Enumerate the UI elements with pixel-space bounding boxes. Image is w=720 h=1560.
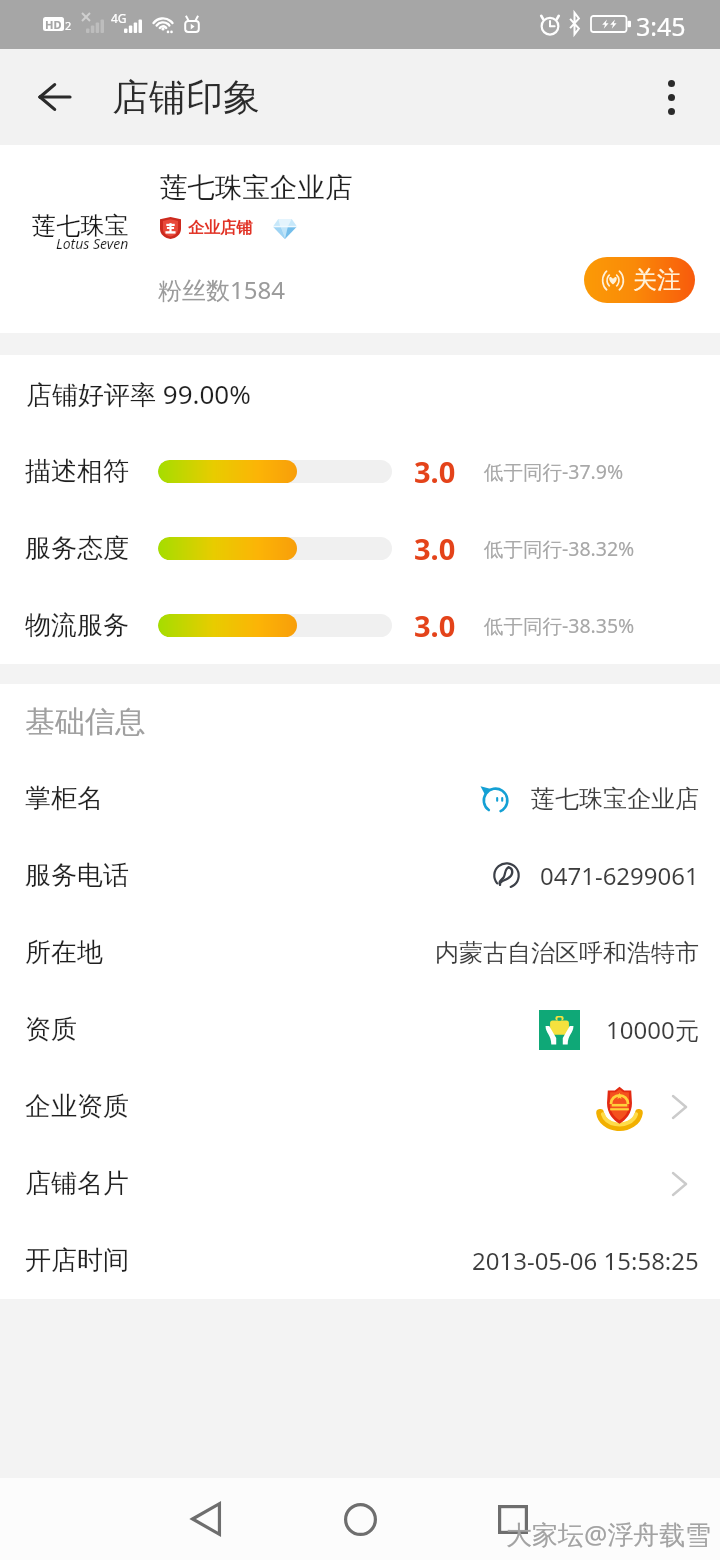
staticText: 3:45 [636, 9, 686, 43]
staticText: 0471-6299061 [540, 859, 699, 892]
staticText: 4G [111, 10, 127, 26]
button[interactable]: Back [0, 49, 110, 145]
staticText: 3.0 [414, 452, 456, 491]
staticText: 莲七珠宝 [32, 211, 129, 241]
staticText: 掌柜名 [25, 782, 103, 815]
button[interactable]: More options [630, 49, 720, 145]
staticText: 描述相符 [25, 455, 129, 488]
staticText: 大家坛@浮舟载雪 [506, 1516, 712, 1552]
button[interactable]: 服务电话 [0, 837, 720, 914]
button[interactable]: 开店时间 [0, 1222, 720, 1299]
staticText: 低于同行-38.35% [484, 612, 635, 639]
staticText: 企业店铺 [188, 218, 252, 238]
button[interactable]: 企业资质 [0, 1068, 720, 1145]
button[interactable]: 店铺名片 [0, 1145, 720, 1222]
staticText: 店铺名片 [25, 1167, 129, 1200]
staticText: 所在地 [25, 936, 103, 969]
staticText: 店铺印象 [112, 74, 260, 121]
staticText: 物流服务 [25, 609, 129, 642]
staticText: 低于同行-37.9% [484, 458, 624, 485]
staticText: 低于同行-38.32% [484, 535, 635, 562]
button[interactable]: 关注 [584, 257, 695, 303]
button[interactable]: 所在地 [0, 914, 720, 991]
staticText: 2013-05-06 15:58:25 [472, 1244, 699, 1277]
staticText: 粉丝数1584 [158, 273, 285, 306]
staticText: 内蒙古自治区呼和浩特市 [435, 938, 699, 968]
staticText: 3.0 [414, 529, 456, 568]
staticText: 10000元 [606, 1013, 699, 1046]
staticText: 资质 [25, 1013, 77, 1046]
staticText: 基础信息 [25, 703, 145, 741]
button[interactable]: 资质 [0, 991, 720, 1068]
staticText: 莲七珠宝企业店 [160, 171, 353, 206]
staticText: 店铺好评率 99.00% [26, 376, 251, 412]
staticText: 企业资质 [25, 1090, 129, 1123]
staticText: Lotus Seven [56, 234, 129, 253]
staticText: 2 [65, 18, 72, 31]
staticText: 服务电话 [25, 859, 129, 892]
button[interactable]: Recent apps [467, 1478, 559, 1560]
staticText: 服务态度 [25, 532, 129, 565]
button[interactable]: 掌柜名 [0, 760, 720, 837]
staticText: 莲七珠宝企业店 [531, 784, 699, 814]
staticText: 关注 [633, 265, 681, 295]
staticText: 开店时间 [25, 1244, 129, 1277]
staticText: HD [45, 17, 62, 31]
button[interactable]: Back [160, 1478, 252, 1560]
button[interactable]: Home [314, 1478, 406, 1560]
staticText: 3.0 [414, 606, 456, 645]
